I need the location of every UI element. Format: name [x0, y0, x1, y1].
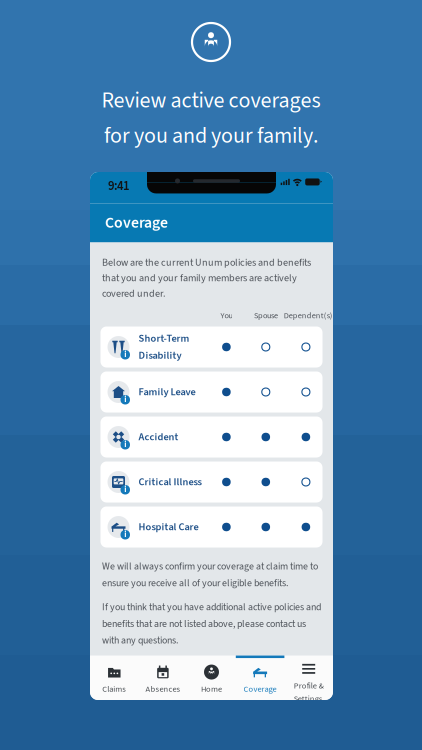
staticText: If you think that you have additional ac…	[102, 600, 321, 648]
staticText: You	[220, 310, 232, 321]
staticText: Dependent(s)	[284, 310, 333, 321]
staticText: Family Leave	[138, 385, 195, 399]
staticText: i	[124, 439, 126, 451]
staticText: for you and your family.	[104, 120, 318, 152]
button[interactable]: Claims	[90, 656, 139, 702]
staticText: i	[124, 349, 126, 361]
staticText: Accident	[138, 430, 178, 444]
staticText: i	[124, 394, 126, 406]
button[interactable]: i	[100, 326, 322, 367]
staticText: Hospital Care	[138, 520, 198, 534]
staticText: We will always confirm your coverage at …	[102, 559, 318, 590]
button[interactable]: Absences	[139, 656, 187, 702]
button[interactable]: Profile & Settings	[284, 656, 333, 702]
button[interactable]: i	[100, 416, 322, 457]
staticText: Review active coverages	[101, 85, 320, 116]
staticText: Below are the current Unum policies and …	[102, 255, 311, 301]
button[interactable]: i	[100, 506, 322, 547]
staticText: Profile & Settings	[294, 680, 324, 705]
staticText: Coverage	[244, 683, 277, 695]
button[interactable]: Coverage	[236, 656, 284, 702]
staticText: Coverage	[105, 212, 168, 234]
staticText: Home	[201, 683, 222, 695]
staticText: i	[124, 484, 126, 496]
button[interactable]: i	[100, 461, 322, 502]
staticText: Spouse	[254, 310, 278, 321]
button[interactable]: Home	[187, 656, 236, 702]
staticText: Absences	[145, 683, 180, 695]
staticText: Short-Term Disability	[138, 331, 189, 363]
button[interactable]: i	[100, 371, 322, 412]
staticText: Claims	[102, 683, 126, 695]
staticText: 9:41	[108, 177, 129, 195]
staticText: i	[124, 529, 126, 541]
staticText: Critical Illness	[138, 475, 201, 489]
